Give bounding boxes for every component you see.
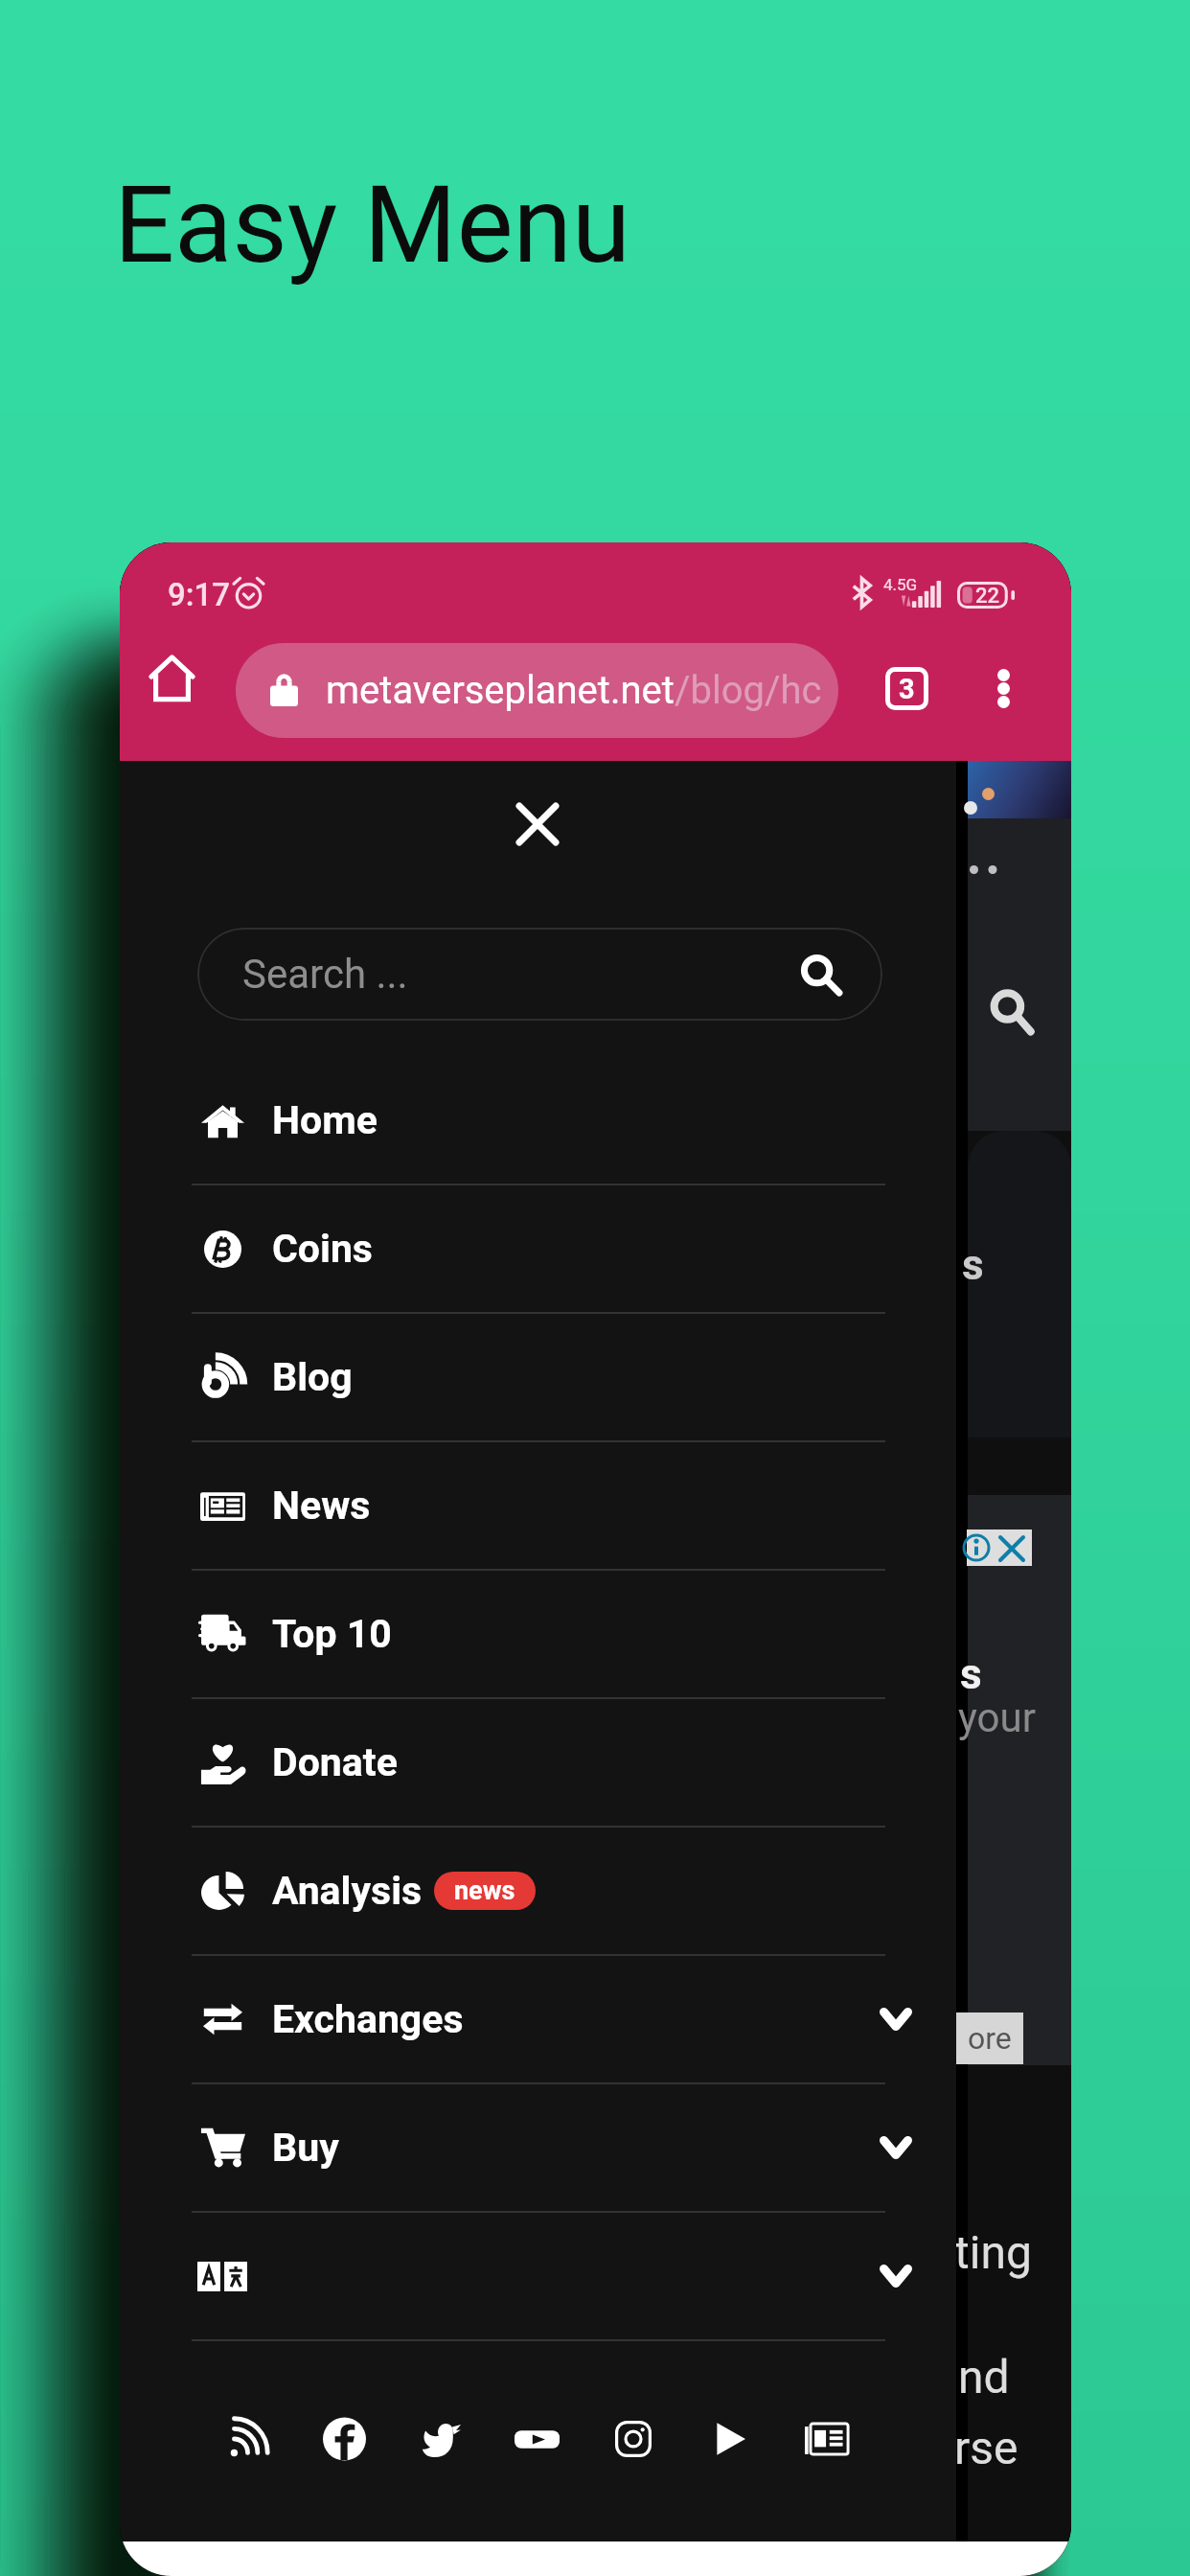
- staticText: s: [962, 1240, 984, 1290]
- button[interactable]: Tabs: [863, 645, 950, 731]
- staticText: nd: [958, 2350, 1010, 2403]
- button[interactable]: Home: [120, 1056, 956, 1184]
- button[interactable]: News: [792, 2404, 861, 2473]
- button[interactable]: YouTube: [502, 2404, 571, 2473]
- staticText: Exchanges: [272, 1996, 464, 2042]
- button[interactable]: More options: [960, 645, 1046, 731]
- button[interactable]: Close menu: [514, 800, 561, 848]
- button[interactable]: Exchanges: [120, 1955, 956, 2083]
- staticText: ore: [968, 2020, 1012, 2057]
- button[interactable]: Analysis: [120, 1827, 956, 1955]
- staticText: Coins: [272, 1226, 373, 1272]
- button[interactable]: Coins: [120, 1184, 956, 1313]
- button[interactable]: Blog: [120, 1313, 956, 1441]
- button[interactable]: News: [120, 1441, 956, 1570]
- button[interactable]: Buy: [120, 2083, 956, 2212]
- staticText: metaverseplanet.net: [326, 668, 675, 713]
- staticText: 22: [975, 584, 1000, 609]
- staticText: Blog: [272, 1354, 353, 1400]
- button[interactable]: Search ...: [197, 928, 882, 1021]
- staticText: 3: [899, 673, 915, 705]
- staticText: Top 10: [272, 1611, 392, 1657]
- button[interactable]: metaverseplanet.net: [236, 643, 838, 738]
- button[interactable]: Instagram: [599, 2404, 668, 2473]
- staticText: Home: [272, 1097, 378, 1143]
- button[interactable]: Google Play: [696, 2404, 765, 2473]
- staticText: Donate: [272, 1739, 398, 1785]
- staticText: Easy Menu: [114, 163, 631, 287]
- staticText: /blog/hc: [675, 668, 822, 713]
- button[interactable]: Facebook: [309, 2404, 378, 2473]
- button[interactable]: RSS feed: [213, 2404, 282, 2473]
- staticText: Buy: [272, 2125, 339, 2171]
- staticText: your: [958, 1694, 1036, 1741]
- staticText: 4.5G: [883, 575, 918, 594]
- button[interactable]: [120, 2212, 956, 2340]
- staticText: s: [960, 1649, 982, 1699]
- button[interactable]: Donate: [120, 1698, 956, 1827]
- button[interactable]: Home: [124, 631, 219, 726]
- staticText: news: [454, 1875, 515, 1906]
- button[interactable]: Top 10: [120, 1570, 956, 1698]
- staticText: 9:17: [168, 576, 231, 613]
- staticText: Search ...: [242, 951, 408, 998]
- button[interactable]: Twitter: [406, 2404, 475, 2473]
- staticText: News: [272, 1483, 371, 1529]
- staticText: Analysis: [272, 1868, 423, 1914]
- staticText: rse: [954, 2421, 1018, 2474]
- staticText: ting: [954, 2225, 1032, 2279]
